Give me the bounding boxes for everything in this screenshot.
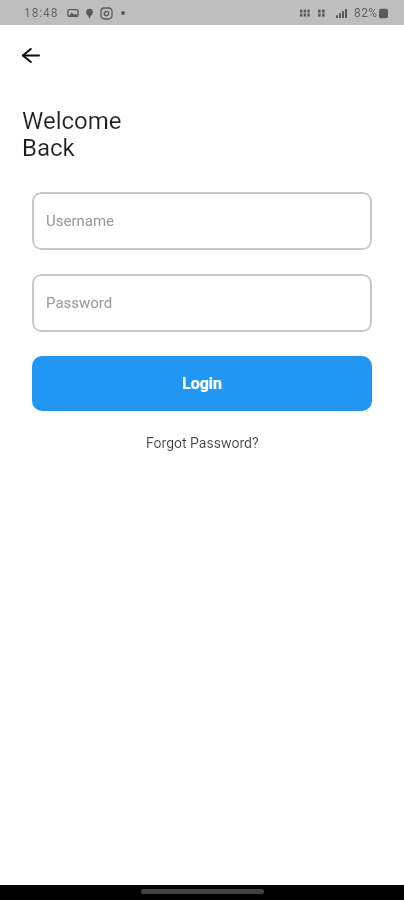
button[interactable]: Forgot Password? [138, 430, 267, 456]
staticText: 18:48 [24, 6, 59, 20]
staticText: Login [182, 374, 223, 393]
button[interactable]: Username [32, 192, 372, 250]
staticText: Username [46, 212, 115, 230]
staticText: 82% [354, 6, 378, 20]
button[interactable]: Login [32, 356, 372, 411]
button[interactable]: Password [32, 274, 372, 332]
staticText: Welcome Back [22, 107, 122, 162]
button[interactable]: Back [0, 25, 60, 85]
staticText: Forgot Password? [146, 435, 259, 451]
staticText: Password [46, 294, 113, 312]
